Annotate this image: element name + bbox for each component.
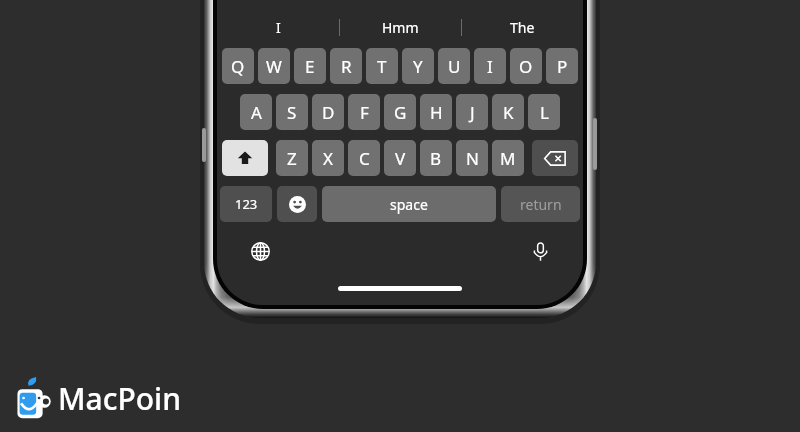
- button[interactable]: H: [420, 94, 452, 130]
- button[interactable]: Shift: [222, 140, 268, 176]
- staticText: I: [487, 55, 493, 78]
- button[interactable]: Backspace: [532, 140, 578, 176]
- staticText: T: [377, 55, 387, 78]
- staticText: S: [287, 101, 297, 124]
- button[interactable]: G: [384, 94, 416, 130]
- button[interactable]: S: [276, 94, 308, 130]
- staticText: MacPoin: [58, 378, 181, 419]
- button[interactable]: Y: [402, 48, 434, 84]
- button[interactable]: 123: [220, 186, 272, 222]
- staticText: Z: [287, 147, 297, 170]
- button[interactable]: P: [546, 48, 578, 84]
- staticText: I: [276, 18, 281, 37]
- button[interactable]: V: [384, 140, 416, 176]
- staticText: X: [323, 147, 333, 170]
- button[interactable]: space: [322, 186, 496, 222]
- staticText: Y: [413, 55, 423, 78]
- button[interactable]: U: [438, 48, 470, 84]
- button[interactable]: J: [456, 94, 488, 130]
- button[interactable]: Hmm: [340, 13, 461, 41]
- staticText: The: [510, 18, 535, 37]
- staticText: 123: [235, 195, 258, 213]
- button[interactable]: O: [510, 48, 542, 84]
- staticText: Hmm: [382, 18, 419, 37]
- button[interactable]: Dictation: [525, 238, 555, 264]
- button[interactable]: M: [492, 140, 524, 176]
- staticText: N: [466, 147, 479, 170]
- button[interactable]: E: [294, 48, 326, 84]
- button[interactable]: K: [492, 94, 524, 130]
- staticText: P: [557, 55, 568, 78]
- staticText: E: [305, 55, 315, 78]
- staticText: R: [341, 55, 352, 78]
- staticText: H: [430, 101, 443, 124]
- button[interactable]: I: [474, 48, 506, 84]
- button[interactable]: Q: [222, 48, 254, 84]
- staticText: L: [540, 101, 549, 124]
- staticText: return: [520, 195, 562, 214]
- button[interactable]: I: [217, 13, 339, 41]
- button[interactable]: Z: [276, 140, 308, 176]
- staticText: D: [322, 101, 335, 124]
- button[interactable]: A: [240, 94, 272, 130]
- staticText: C: [359, 147, 370, 170]
- button[interactable]: N: [456, 140, 488, 176]
- button[interactable]: C: [348, 140, 380, 176]
- button[interactable]: B: [420, 140, 452, 176]
- button[interactable]: L: [528, 94, 560, 130]
- button[interactable]: D: [312, 94, 344, 130]
- staticText: M: [500, 147, 516, 170]
- button[interactable]: W: [258, 48, 290, 84]
- staticText: space: [390, 195, 428, 214]
- button[interactable]: The: [462, 13, 583, 41]
- staticText: V: [395, 147, 406, 170]
- staticText: Q: [231, 55, 245, 78]
- button[interactable]: X: [312, 140, 344, 176]
- button[interactable]: return: [501, 186, 580, 222]
- staticText: U: [448, 55, 461, 78]
- staticText: G: [394, 101, 407, 124]
- staticText: J: [470, 101, 475, 124]
- button[interactable]: T: [366, 48, 398, 84]
- staticText: W: [266, 55, 282, 78]
- button[interactable]: R: [330, 48, 362, 84]
- button[interactable]: F: [348, 94, 380, 130]
- button[interactable]: Change keyboard: [245, 238, 275, 264]
- staticText: F: [360, 101, 369, 124]
- staticText: K: [503, 101, 514, 124]
- button[interactable]: Emoji: [277, 186, 317, 222]
- staticText: B: [430, 147, 442, 170]
- staticText: A: [251, 101, 262, 124]
- staticText: O: [519, 55, 533, 78]
